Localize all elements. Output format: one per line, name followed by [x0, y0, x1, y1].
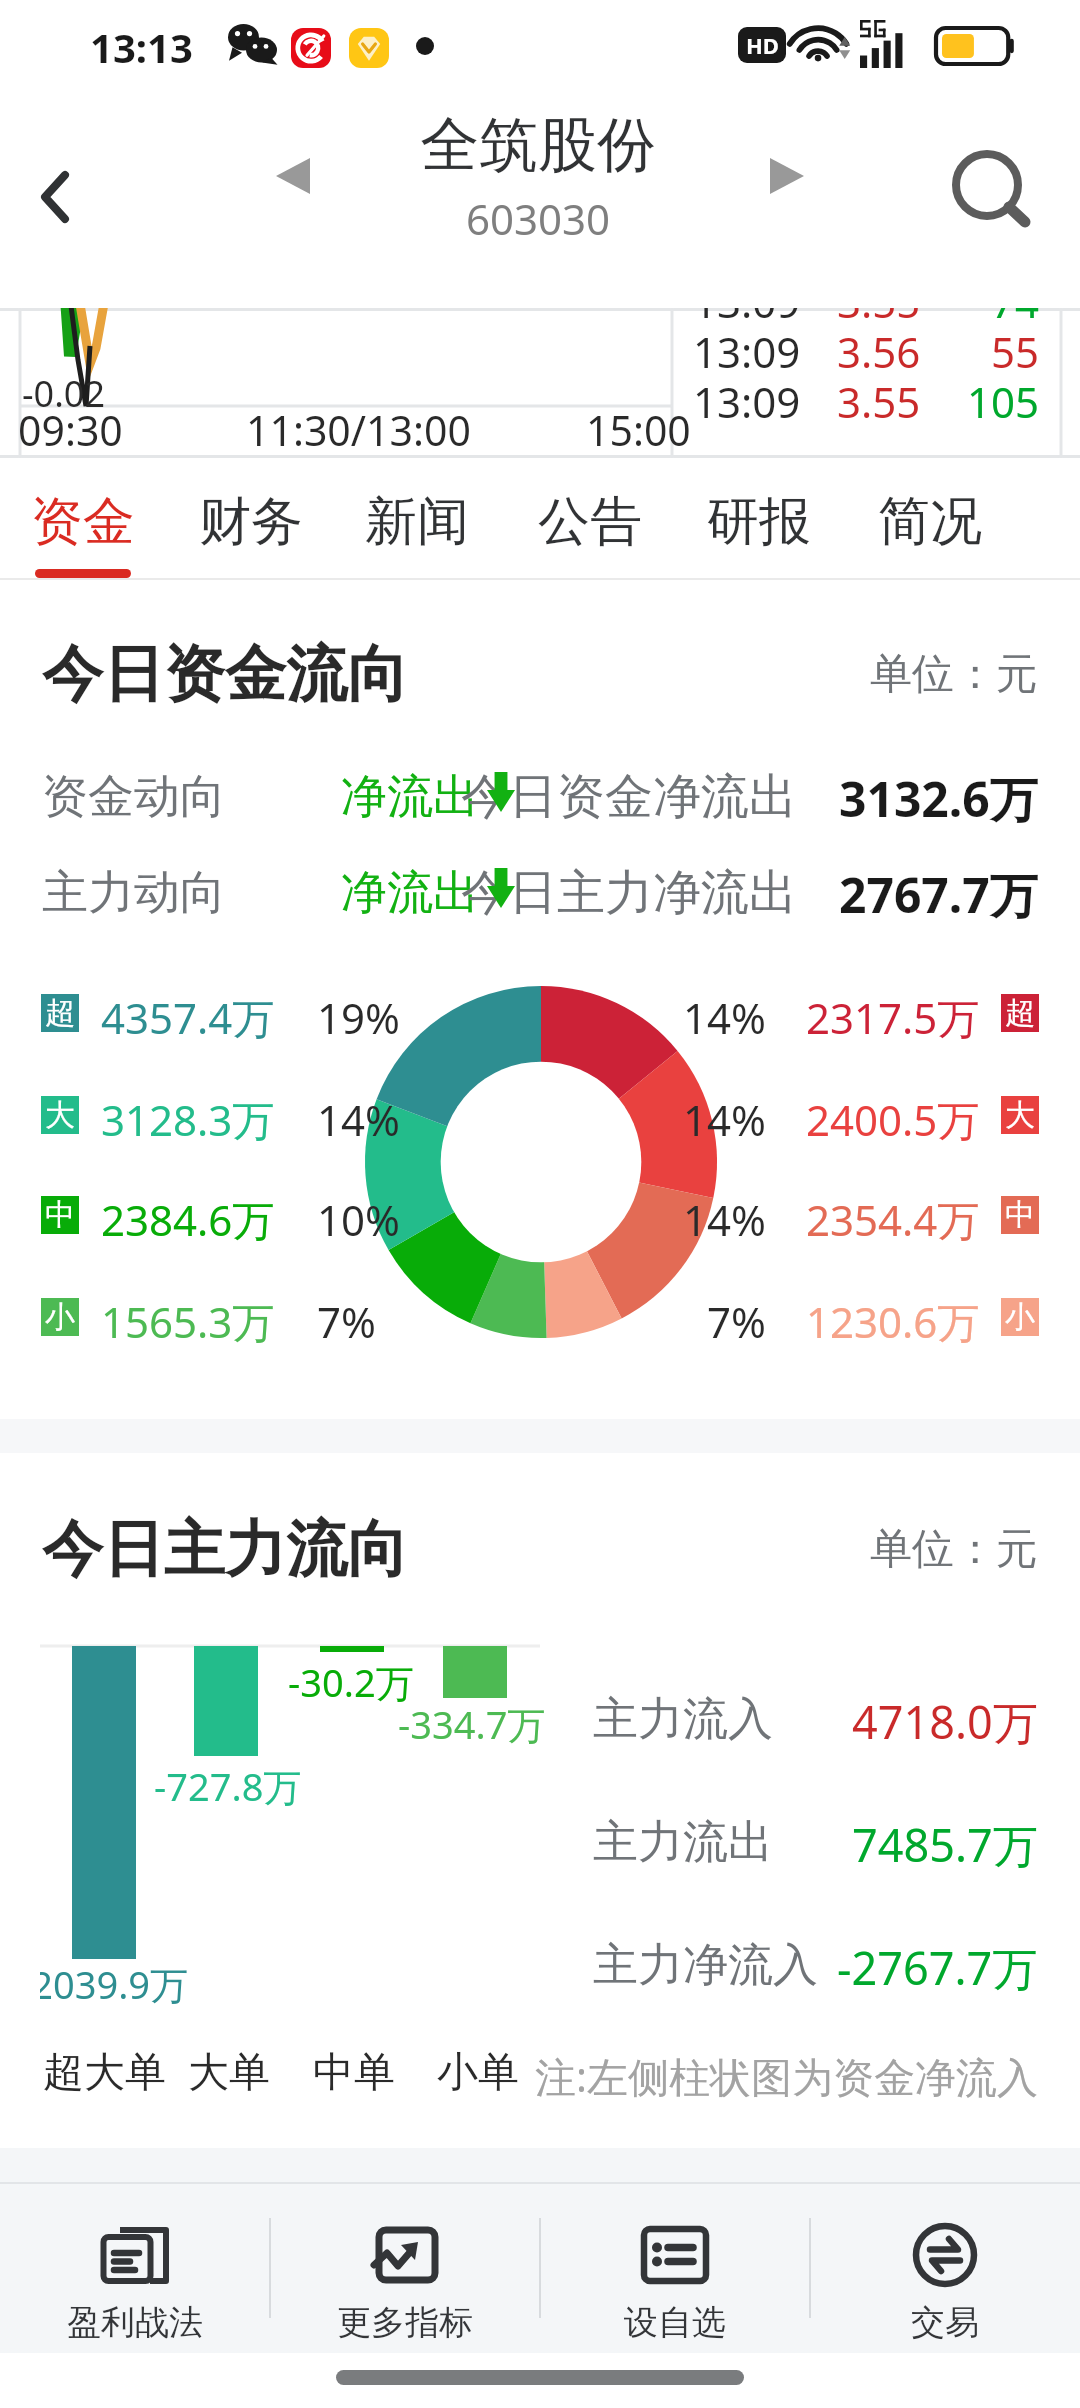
staticText: 今日资金流向 [42, 636, 408, 713]
staticText: 简况 [878, 489, 982, 555]
staticText: 13:09 [693, 323, 801, 380]
staticText: 3.56 [837, 323, 921, 380]
staticText: -2767.7万 [837, 1937, 1038, 1998]
staticText: 7% [317, 1293, 376, 1350]
staticText: 资金动向 [42, 768, 226, 826]
staticText: -727.8万 [154, 1760, 302, 1812]
staticText: 13:09 [693, 308, 801, 330]
staticText: 603030 [466, 190, 611, 247]
staticText: 主力流出 [593, 1814, 773, 1871]
staticText: 公告 [538, 489, 642, 555]
staticText: -2039.9万 [40, 1958, 189, 2010]
staticText: 10% [317, 1191, 400, 1248]
staticText: 大 [1005, 1096, 1035, 1134]
button[interactable]: 交易 [810, 2184, 1080, 2353]
button[interactable]: 资金 [1, 458, 165, 580]
staticText: 超 [45, 994, 75, 1032]
button[interactable]: 研报 [677, 458, 841, 580]
staticText: 今日资金净流出 [461, 767, 797, 827]
staticText: 3.55 [837, 308, 921, 330]
staticText: 大 [45, 1096, 75, 1134]
staticText: 14% [683, 1191, 766, 1248]
staticText: 资金 [31, 489, 135, 555]
button[interactable]: 简况 [848, 458, 1012, 580]
staticText: -30.2万 [288, 1656, 414, 1708]
staticText: 研报 [707, 489, 811, 555]
staticText: 设自选 [624, 2301, 726, 2344]
staticText: 净流出 [341, 864, 479, 922]
button[interactable]: 公告 [508, 458, 672, 580]
staticText: 11:30/13:00 [246, 402, 471, 458]
button[interactable]: 盈利战法 [0, 2184, 270, 2353]
staticText: 55 [991, 323, 1040, 380]
staticText: 中 [45, 1196, 75, 1234]
staticText: 74 [991, 308, 1040, 330]
button[interactable]: 设自选 [540, 2184, 810, 2353]
staticText: 财务 [199, 489, 303, 555]
staticText: 15:00 [586, 402, 691, 458]
button[interactable]: Previous stock [247, 130, 339, 222]
staticText: 小 [1005, 1298, 1035, 1336]
staticText: 7% [707, 1293, 766, 1350]
staticText: HD [746, 30, 779, 60]
staticText: 105 [967, 373, 1040, 430]
staticText: 大单 [188, 2047, 270, 2099]
staticText: 1230.6万 [806, 1293, 980, 1350]
staticText: 13:13 [90, 20, 193, 74]
button[interactable]: 更多指标 [270, 2184, 540, 2353]
staticText: 新闻 [365, 489, 469, 555]
staticText: 全筑股份 [420, 108, 656, 182]
staticText: 2384.6万 [101, 1191, 275, 1248]
staticText: 3132.6万 [839, 766, 1038, 832]
staticText: 09:30 [18, 402, 123, 458]
staticText: 小单 [437, 2047, 519, 2099]
staticText: 主力净流入 [593, 1937, 818, 1994]
staticText: 13:09 [693, 373, 801, 430]
staticText: -0.02 [22, 369, 106, 418]
button[interactable]: Back [0, 142, 110, 252]
staticText: 中 [1005, 1196, 1035, 1234]
staticText: 更多指标 [337, 2301, 473, 2344]
button[interactable]: 财务 [169, 458, 333, 580]
staticText: 超 [1005, 994, 1035, 1032]
button[interactable]: 新闻 [335, 458, 499, 580]
staticText: 2767.7万 [839, 862, 1038, 928]
staticText: -334.7万 [398, 1698, 546, 1750]
staticText: 2354.4万 [806, 1191, 980, 1248]
staticText: 超大单 [43, 2047, 166, 2099]
staticText: 今日主力净流出 [461, 863, 797, 923]
button[interactable]: Search [936, 120, 1048, 232]
staticText: 4718.0万 [852, 1691, 1038, 1752]
staticText: 7485.7万 [852, 1814, 1038, 1875]
staticText: 14% [683, 989, 766, 1046]
staticText: 净流出 [341, 768, 479, 826]
staticText: 14% [317, 1091, 400, 1148]
staticText: 主力动向 [42, 864, 226, 922]
staticText: 19% [317, 989, 400, 1046]
button[interactable]: Next stock [741, 130, 833, 222]
staticText: 单位：元 [870, 1523, 1038, 1576]
staticText: 3.55 [837, 373, 921, 430]
staticText: 14% [683, 1091, 766, 1148]
staticText: 今日主力流向 [42, 1511, 408, 1588]
staticText: 单位：元 [870, 648, 1038, 701]
staticText: 4357.4万 [101, 989, 275, 1046]
staticText: 2400.5万 [806, 1091, 980, 1148]
staticText: 中单 [313, 2047, 395, 2099]
staticText: 2317.5万 [806, 989, 980, 1046]
staticText: 主力流入 [593, 1691, 773, 1748]
staticText: 注:左侧柱状图为资金净流入 [535, 2048, 1038, 2104]
staticText: 交易 [911, 2301, 979, 2344]
staticText: 小 [45, 1298, 75, 1336]
staticText: 盈利战法 [67, 2301, 203, 2344]
staticText: 1565.3万 [101, 1293, 275, 1350]
staticText: 3128.3万 [101, 1091, 275, 1148]
